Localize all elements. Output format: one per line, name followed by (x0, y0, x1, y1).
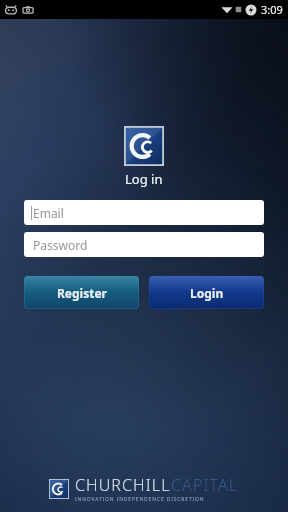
button[interactable]: Email (24, 200, 264, 225)
other: Battery charging (245, 4, 257, 16)
button[interactable]: Login (149, 276, 264, 309)
staticText: CHURCHILL (75, 474, 171, 496)
staticText: CAPITAL (171, 474, 239, 496)
other: System notification (4, 3, 18, 17)
staticText: 3:09 (261, 2, 283, 17)
button[interactable]: Register (24, 276, 139, 309)
staticText: Login (190, 285, 224, 301)
other: Wi-Fi (221, 4, 233, 16)
staticText: Email (33, 205, 64, 221)
staticText: Register (57, 285, 107, 301)
staticText: Password (33, 237, 88, 253)
staticText: Log in (125, 170, 163, 188)
button[interactable]: Password (24, 232, 264, 257)
other: Camera (22, 4, 34, 16)
staticText: INNOVATION INDEPENDENCE DISCRETION (75, 496, 205, 503)
